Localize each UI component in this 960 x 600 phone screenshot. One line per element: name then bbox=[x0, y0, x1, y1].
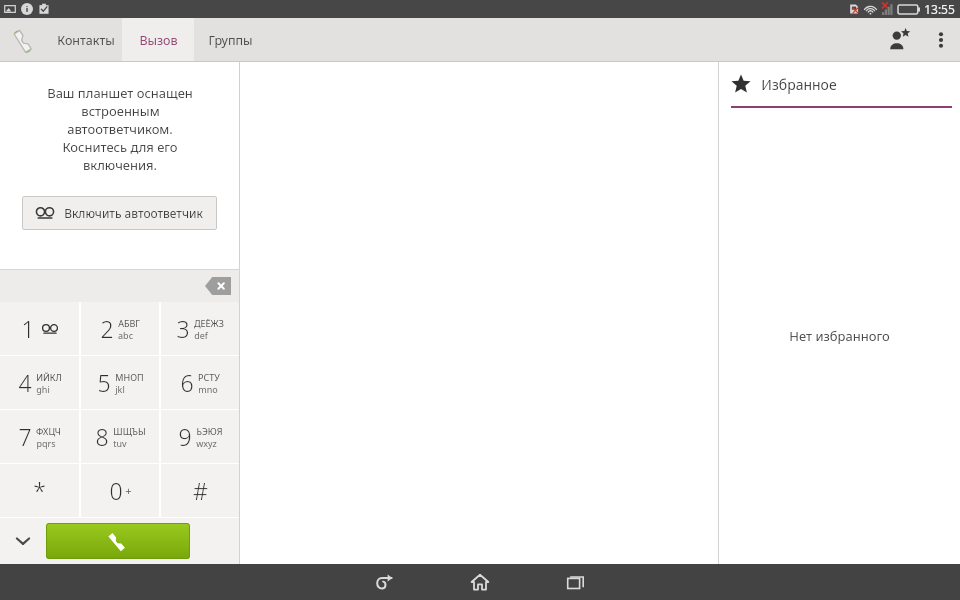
button[interactable]: Hide dialpad bbox=[0, 518, 46, 564]
staticText: 8 bbox=[95, 421, 109, 452]
staticText: автоответчиком. bbox=[67, 120, 173, 138]
button[interactable]: 9 bbox=[161, 410, 239, 463]
button[interactable]: Backspace bbox=[205, 277, 231, 295]
staticText: РСТУ bbox=[198, 371, 220, 383]
button[interactable]: Вызов bbox=[122, 18, 194, 62]
staticText: 6 bbox=[180, 367, 194, 398]
button[interactable]: * bbox=[0, 464, 79, 517]
staticText: mno bbox=[198, 383, 218, 395]
button[interactable]: 3 bbox=[161, 302, 239, 355]
button[interactable]: 0 bbox=[81, 464, 159, 517]
staticText: 5 bbox=[97, 367, 111, 398]
staticText: 3 bbox=[176, 313, 190, 344]
button[interactable]: Add favorite contact bbox=[876, 18, 922, 62]
staticText: ШЩЪЫ bbox=[113, 425, 146, 437]
staticText: включения. bbox=[83, 156, 157, 174]
button[interactable]: Back bbox=[336, 564, 432, 600]
staticText: + bbox=[125, 483, 132, 498]
staticText: ghi bbox=[36, 383, 50, 395]
staticText: встроенным bbox=[81, 102, 160, 120]
staticText: 2 bbox=[100, 313, 114, 344]
staticText: МНОП bbox=[115, 371, 144, 383]
button[interactable]: Контакты bbox=[50, 18, 122, 62]
staticText: АБВГ bbox=[118, 317, 140, 329]
staticText: tuv bbox=[113, 437, 127, 449]
staticText: 0 bbox=[109, 475, 123, 506]
staticText: Группы bbox=[208, 32, 253, 49]
staticText: wxyz bbox=[196, 437, 217, 449]
button[interactable]: Группы bbox=[194, 18, 266, 62]
staticText: 7 bbox=[18, 421, 32, 452]
staticText: Вызов bbox=[139, 32, 178, 49]
button[interactable]: Call bbox=[46, 523, 190, 559]
staticText: * bbox=[33, 475, 46, 506]
staticText: pqrs bbox=[36, 437, 56, 449]
staticText: def bbox=[194, 329, 208, 341]
staticText: Избранное bbox=[761, 75, 837, 94]
staticText: ИЙКЛ bbox=[36, 371, 62, 383]
button[interactable]: Home bbox=[432, 564, 528, 600]
staticText: 9 bbox=[178, 421, 192, 452]
staticText: 4 bbox=[18, 367, 32, 398]
button[interactable]: 2 bbox=[81, 302, 159, 355]
button[interactable]: 7 bbox=[0, 410, 79, 463]
staticText: Контакты bbox=[57, 32, 115, 49]
button[interactable]: More options bbox=[922, 18, 960, 62]
staticText: ЬЭЮЯ bbox=[196, 425, 223, 437]
button[interactable]: 4 bbox=[0, 356, 79, 409]
button[interactable]: Включить автоответчик bbox=[22, 196, 217, 230]
button[interactable]: Recent apps bbox=[528, 564, 624, 600]
staticText: ФХЦЧ bbox=[36, 425, 61, 437]
staticText: 13:55 bbox=[924, 1, 955, 17]
staticText: jkl bbox=[115, 383, 125, 395]
staticText: ДЕЁЖЗ bbox=[194, 317, 224, 329]
button[interactable]: Phone bbox=[0, 18, 50, 62]
staticText: # bbox=[193, 475, 208, 506]
staticText: Ваш планшет оснащен bbox=[47, 84, 193, 102]
staticText: Нет избранного bbox=[789, 327, 890, 345]
staticText: 1 bbox=[21, 313, 35, 344]
button[interactable]: # bbox=[161, 464, 239, 517]
staticText: abc bbox=[118, 329, 133, 341]
button[interactable]: 8 bbox=[81, 410, 159, 463]
button[interactable]: 5 bbox=[81, 356, 159, 409]
button[interactable]: 6 bbox=[161, 356, 239, 409]
button[interactable]: 1 bbox=[0, 302, 79, 355]
staticText: Коснитесь для его bbox=[62, 138, 178, 156]
button[interactable]: Backspace bbox=[0, 269, 239, 302]
staticText: Включить автоответчик bbox=[64, 205, 203, 221]
